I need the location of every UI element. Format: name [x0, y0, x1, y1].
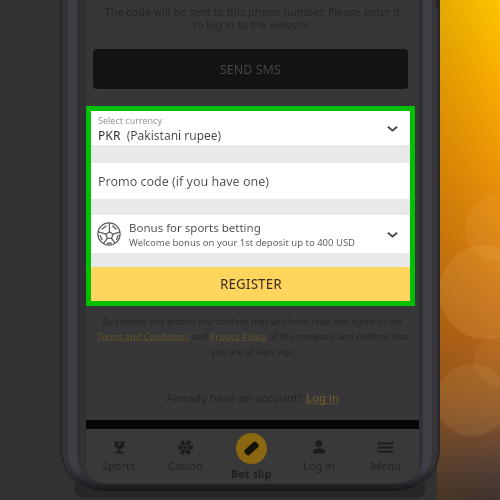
button[interactable]: Log in [285, 429, 352, 483]
button[interactable]: Select currency [91, 111, 410, 145]
staticText: By clicking this button you confirm that… [88, 315, 417, 357]
button[interactable]: Promo code (if you have one) [91, 163, 410, 199]
button[interactable]: SEND SMS [93, 49, 408, 89]
staticText: SEND SMS [220, 61, 281, 78]
staticText: REGISTER [220, 275, 282, 293]
staticText: Select currency [98, 114, 163, 126]
staticText: Casino [168, 458, 203, 473]
staticText: Promo code (if you have one) [98, 173, 270, 190]
staticText: PKR (Pakistani rupee) [98, 127, 222, 143]
staticText: Bet slip [231, 466, 272, 481]
button[interactable]: REGISTER [91, 267, 410, 301]
staticText: The code will be sent to this phone numb… [86, 4, 419, 32]
staticText: Welcome bonus on your 1st deposit up to … [129, 236, 356, 249]
other: Bet slip [243, 440, 260, 457]
staticText: Bonus for sports betting [129, 220, 261, 236]
button[interactable]: Casino [152, 429, 218, 483]
button[interactable]: Bet slip [218, 429, 285, 483]
button[interactable]: Log in [306, 390, 340, 406]
button[interactable]: Menu [352, 429, 419, 483]
staticText: Sports [102, 458, 136, 473]
staticText: Log in [306, 390, 340, 406]
button[interactable]: Bonus for sports betting [91, 215, 410, 253]
staticText: Log in [303, 458, 335, 473]
staticText: Already have an account? [166, 390, 306, 406]
staticText: Menu [371, 458, 401, 473]
button[interactable]: Sports [86, 429, 152, 483]
